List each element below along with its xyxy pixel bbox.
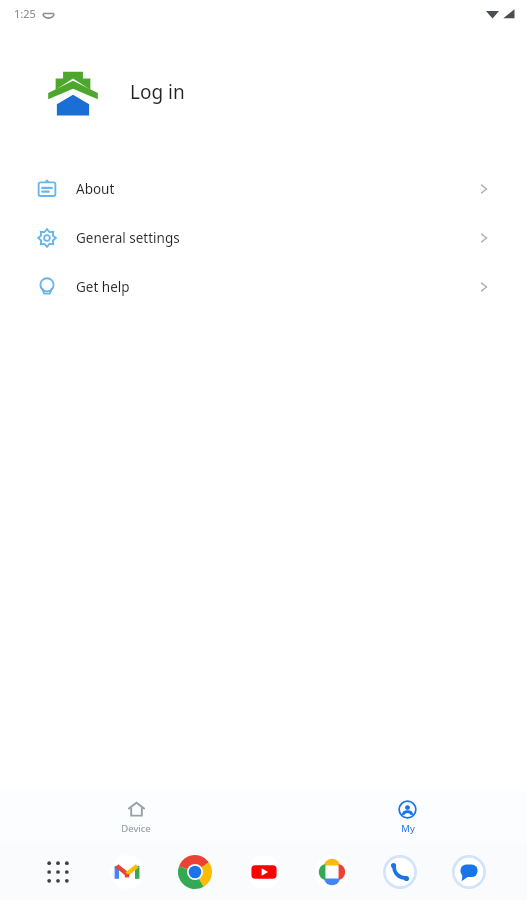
staticText: 1:25: [14, 6, 36, 21]
staticText: General settings: [76, 229, 180, 247]
staticText: My: [401, 822, 415, 835]
button[interactable]: Photos: [312, 852, 352, 892]
button[interactable]: Get help: [18, 262, 509, 311]
button[interactable]: Messages: [449, 852, 489, 892]
button[interactable]: Chrome: [175, 852, 215, 892]
button[interactable]: Log in: [130, 79, 185, 105]
button[interactable]: YouTube: [244, 852, 284, 892]
staticText: Get help: [76, 278, 130, 296]
button[interactable]: Gmail: [107, 852, 147, 892]
button[interactable]: About: [18, 164, 509, 213]
button[interactable]: Phone: [380, 852, 420, 892]
button[interactable]: General settings: [18, 213, 509, 262]
button[interactable]: My: [382, 796, 433, 839]
button[interactable]: Apps: [38, 852, 78, 892]
button[interactable]: Device: [105, 796, 167, 839]
staticText: Device: [121, 822, 151, 835]
staticText: About: [76, 180, 115, 198]
